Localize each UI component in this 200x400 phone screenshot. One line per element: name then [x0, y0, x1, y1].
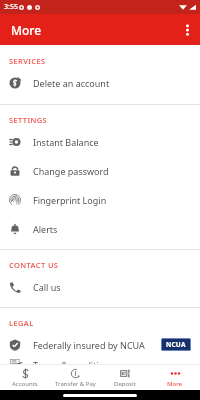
staticText: Accounts [12, 380, 38, 388]
staticText: More [11, 22, 42, 38]
staticText: Federally insured by NCUA [33, 339, 161, 351]
button[interactable]: Call us [0, 272, 200, 301]
staticText: CONTACT US [9, 260, 59, 270]
button[interactable]: Alerts [0, 214, 200, 243]
staticText: 3:55 [4, 2, 18, 12]
staticText: SETTINGS [9, 115, 48, 125]
staticText: Terms & conditions [33, 359, 191, 364]
staticText: Instant Balance [33, 136, 191, 148]
staticText: More [167, 380, 183, 388]
staticText: Call us [33, 281, 191, 293]
staticText: SERVICES [9, 56, 46, 66]
staticText: Alerts [33, 223, 191, 235]
button[interactable]: Transfer & Pay [50, 365, 100, 390]
button[interactable]: Delete an account [0, 68, 200, 97]
button[interactable]: Fingerprint Login [0, 185, 200, 214]
staticText: NCUA [166, 340, 186, 349]
button[interactable]: Deposit [100, 365, 150, 390]
button[interactable]: More options [174, 14, 200, 45]
button[interactable]: More [150, 365, 200, 390]
staticText: Deposit [114, 380, 136, 388]
button[interactable]: Terms & conditions [0, 359, 200, 364]
button[interactable]: Change password [0, 156, 200, 185]
staticText: Delete an account [33, 77, 191, 89]
button[interactable]: Accounts [0, 365, 50, 390]
staticText: Fingerprint Login [33, 194, 191, 206]
button[interactable]: Federally insured by NCUA [0, 330, 200, 359]
staticText: Change password [33, 165, 191, 177]
staticText: LEGAL [9, 318, 34, 328]
staticText: Transfer & Pay [55, 380, 96, 388]
button[interactable]: Instant Balance [0, 127, 200, 156]
